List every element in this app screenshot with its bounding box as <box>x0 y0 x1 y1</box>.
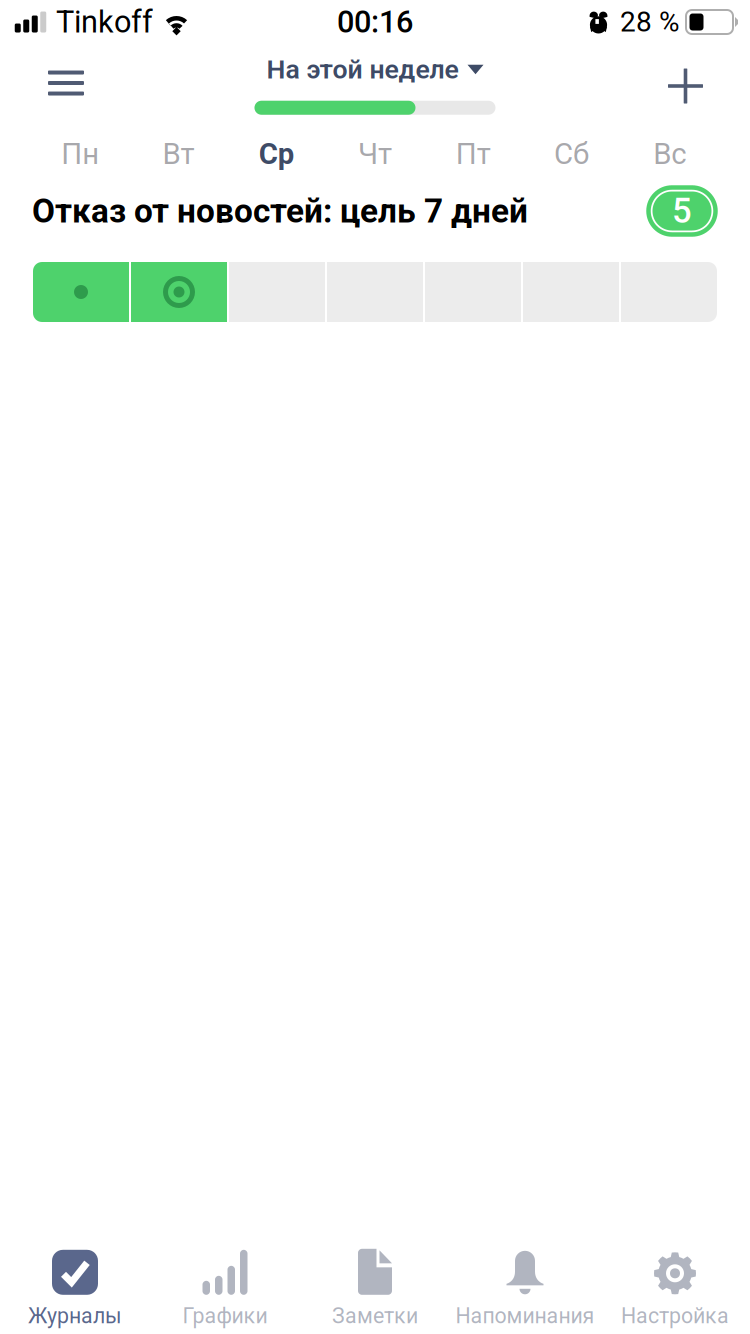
button[interactable]: Меню <box>0 55 108 116</box>
staticText: 00:16 <box>337 4 413 39</box>
staticText: Заметки <box>332 1304 418 1328</box>
button[interactable]: Графики <box>150 1228 300 1334</box>
button[interactable]: Понедельник выполнен <box>33 262 129 322</box>
button[interactable]: Журналы <box>0 1228 150 1334</box>
staticText: Ср <box>259 137 295 171</box>
staticText: Чт <box>358 137 392 171</box>
staticText: Вт <box>162 137 194 171</box>
staticText: Пн <box>61 137 99 171</box>
button[interactable]: Серия 5 дней <box>646 185 718 237</box>
staticText: Tinkoff <box>56 4 153 39</box>
staticText: Напоминания <box>455 1304 594 1328</box>
staticText: На этой неделе <box>266 54 458 85</box>
staticText: Отказ от новостей: цель 7 дней <box>32 192 528 230</box>
staticText: Сб <box>554 137 589 171</box>
staticText: Вс <box>653 137 686 171</box>
button[interactable]: Напоминания <box>450 1228 600 1334</box>
staticText: 28 % <box>620 6 680 38</box>
staticText: Журналы <box>28 1304 122 1328</box>
button[interactable]: Заметки <box>300 1228 450 1334</box>
staticText: Графики <box>182 1304 267 1328</box>
staticText: 5 <box>672 191 692 231</box>
button[interactable]: Вторник сегодня <box>131 262 227 322</box>
button[interactable]: На этой неделе <box>242 54 507 118</box>
staticText: Настройка <box>621 1304 729 1328</box>
staticText: Пт <box>456 137 491 171</box>
button[interactable]: Добавить <box>644 54 750 117</box>
button[interactable]: Настройка <box>600 1228 750 1334</box>
